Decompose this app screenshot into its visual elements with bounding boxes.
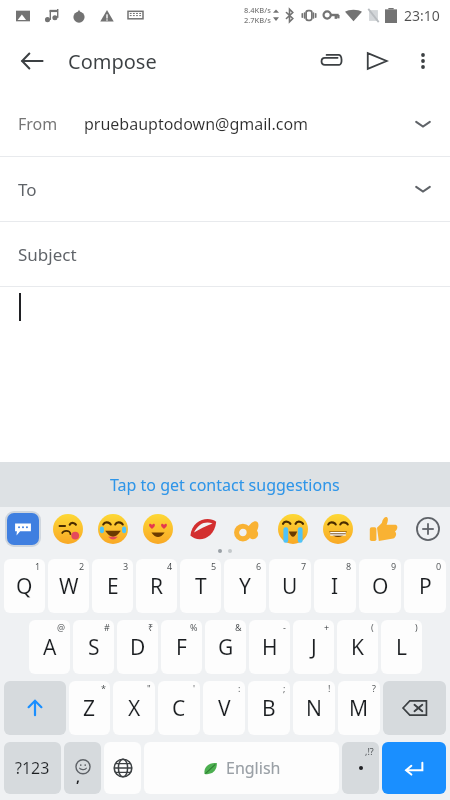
button[interactable]: S bbox=[73, 620, 114, 674]
button[interactable]: ,!? bbox=[342, 742, 379, 794]
staticText: F bbox=[176, 633, 187, 662]
button[interactable]: Emoji bbox=[135, 509, 180, 549]
staticText: M bbox=[349, 694, 369, 723]
button[interactable]: M bbox=[338, 681, 380, 735]
staticText: E bbox=[107, 572, 119, 601]
staticText: S bbox=[88, 633, 100, 662]
button[interactable]: N bbox=[293, 681, 335, 735]
button[interactable]: Emoji bbox=[180, 509, 225, 549]
staticText: 7 bbox=[301, 560, 307, 572]
staticText: ; bbox=[283, 682, 286, 694]
staticText: 23:10 bbox=[404, 6, 440, 25]
button[interactable]: Change language bbox=[104, 742, 141, 794]
staticText: J bbox=[311, 633, 317, 662]
button[interactable]: Z bbox=[69, 681, 110, 735]
staticText: T bbox=[195, 572, 207, 601]
button[interactable]: Attach file bbox=[308, 38, 354, 84]
staticText: U bbox=[282, 572, 298, 601]
button[interactable]: W bbox=[48, 559, 89, 613]
button[interactable]: Q bbox=[4, 559, 45, 613]
staticText: W bbox=[59, 572, 79, 601]
staticText: B bbox=[262, 694, 276, 723]
staticText: 5 bbox=[211, 560, 217, 572]
button[interactable]: Enter bbox=[382, 742, 446, 794]
button[interactable]: U bbox=[269, 559, 311, 613]
staticText: O bbox=[372, 572, 389, 601]
button[interactable]: G bbox=[205, 620, 246, 674]
staticText: Compose bbox=[68, 48, 157, 75]
button[interactable]: Emoji bbox=[45, 509, 90, 549]
button[interactable] bbox=[0, 509, 45, 549]
staticText: V bbox=[218, 694, 231, 723]
button[interactable]: Send bbox=[354, 38, 400, 84]
staticText: ? bbox=[372, 682, 376, 694]
staticText: pruebauptodown@gmail.com bbox=[84, 113, 309, 135]
staticText: ?123 bbox=[15, 757, 50, 779]
button[interactable]: More emoji bbox=[405, 509, 450, 549]
staticText: D bbox=[130, 633, 146, 662]
button[interactable]: Emoji bbox=[90, 509, 135, 549]
button[interactable]: D bbox=[117, 620, 158, 674]
staticText: : bbox=[238, 682, 241, 694]
button[interactable]: Backspace bbox=[383, 681, 446, 735]
button[interactable]: L bbox=[381, 620, 422, 674]
staticText: - bbox=[283, 621, 286, 633]
button[interactable]: Back bbox=[8, 37, 56, 85]
button[interactable]: ?123 bbox=[4, 742, 61, 794]
button[interactable]: F bbox=[161, 620, 202, 674]
button[interactable]: J bbox=[293, 620, 334, 674]
staticText: * bbox=[101, 682, 106, 694]
button[interactable]: Y bbox=[224, 559, 266, 613]
staticText: 9 bbox=[391, 560, 397, 572]
staticText: 1 bbox=[35, 560, 41, 572]
button[interactable]: To bbox=[0, 157, 450, 221]
staticText: X bbox=[128, 694, 141, 723]
button[interactable]: C bbox=[158, 681, 200, 735]
button[interactable]: Emoji bbox=[225, 509, 270, 549]
button[interactable]: Emoji bbox=[270, 509, 315, 549]
button[interactable]: From bbox=[0, 92, 450, 156]
staticText: ,!? bbox=[365, 745, 374, 757]
button[interactable]: More options bbox=[400, 38, 446, 84]
staticText: Z bbox=[83, 694, 96, 723]
button[interactable]: K bbox=[337, 620, 378, 674]
staticText: & bbox=[235, 621, 242, 633]
staticText: % bbox=[190, 621, 198, 633]
staticText: , bbox=[76, 767, 80, 786]
button[interactable]: V bbox=[203, 681, 245, 735]
button[interactable]: B bbox=[248, 681, 290, 735]
button[interactable]: X bbox=[113, 681, 155, 735]
button[interactable]: English bbox=[144, 742, 339, 794]
staticText: ₹ bbox=[148, 621, 154, 633]
button[interactable]: Emoji bbox=[64, 742, 101, 794]
button[interactable]: Shift bbox=[4, 681, 66, 735]
staticText: ' bbox=[193, 682, 196, 694]
staticText: G bbox=[218, 633, 234, 662]
staticText: 2 bbox=[79, 560, 85, 572]
button[interactable]: O bbox=[359, 559, 401, 613]
button[interactable]: R bbox=[136, 559, 177, 613]
button[interactable]: Emoji bbox=[315, 509, 360, 549]
button[interactable]: P bbox=[404, 559, 446, 613]
button[interactable] bbox=[0, 287, 450, 327]
staticText: H bbox=[262, 633, 278, 662]
button[interactable]: Tap to get contact suggestions bbox=[0, 462, 450, 507]
button[interactable]: Emoji bbox=[360, 509, 405, 549]
button[interactable]: Subject bbox=[0, 222, 450, 286]
staticText: 8 bbox=[346, 560, 352, 572]
staticText: To bbox=[18, 178, 37, 201]
button[interactable]: E bbox=[92, 559, 133, 613]
staticText: # bbox=[104, 621, 110, 633]
button[interactable]: H bbox=[249, 620, 290, 674]
staticText: ( bbox=[371, 621, 374, 633]
button[interactable]: A bbox=[29, 620, 70, 674]
staticText: N bbox=[306, 694, 322, 723]
staticText: L bbox=[396, 633, 408, 662]
button[interactable]: T bbox=[180, 559, 221, 613]
staticText: @ bbox=[57, 621, 66, 633]
button[interactable]: I bbox=[314, 559, 356, 613]
staticText: ) bbox=[415, 621, 418, 633]
staticText: 3 bbox=[123, 560, 129, 572]
staticText: Subject bbox=[18, 243, 77, 266]
staticText: P bbox=[419, 572, 432, 601]
